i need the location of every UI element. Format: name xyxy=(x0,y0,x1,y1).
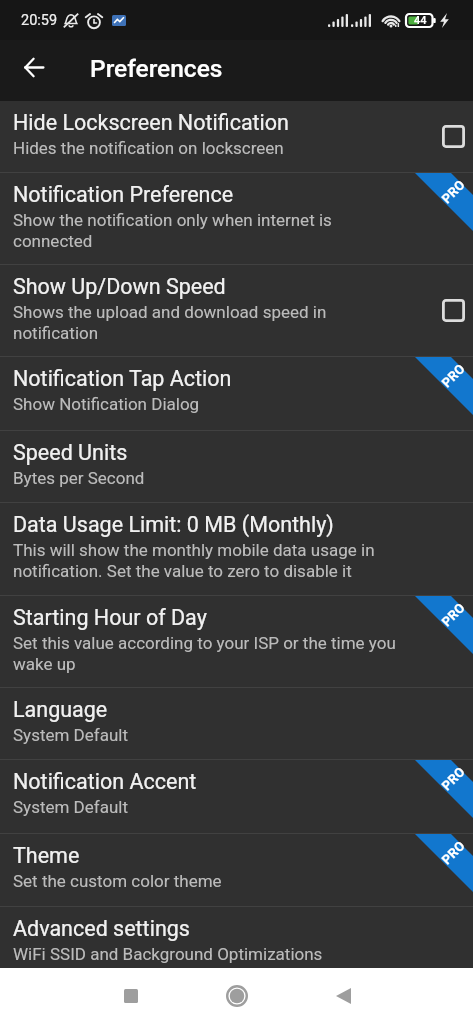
button[interactable]: Recent apps xyxy=(78,968,184,1024)
staticText: Shows the upload and download speed in n… xyxy=(13,302,327,343)
staticText: PRO xyxy=(439,600,468,629)
button[interactable]: Toggle Hide Lockscreen Notification xyxy=(419,101,473,172)
button[interactable]: Speed Units xyxy=(0,431,473,502)
staticText: Hides the notification on lockscreen xyxy=(13,138,284,158)
button[interactable]: Theme xyxy=(0,834,473,906)
button[interactable]: Show Up/Down Speed xyxy=(0,265,473,356)
staticText: Set this value according to your ISP or … xyxy=(13,633,396,674)
staticText: Speed Units xyxy=(13,440,128,465)
staticText: Bytes per Second xyxy=(13,468,145,488)
button[interactable]: Notification Accent xyxy=(0,760,473,833)
staticText: System Default xyxy=(13,797,129,817)
staticText: Data Usage Limit: 0 MB (Monthly) xyxy=(13,512,334,537)
button[interactable]: Advanced settings xyxy=(0,907,473,968)
button[interactable]: Back xyxy=(290,968,396,1024)
staticText: PRO xyxy=(439,838,468,867)
staticText: PRO xyxy=(439,177,468,206)
staticText: PRO xyxy=(439,361,468,390)
staticText: Theme xyxy=(13,843,80,868)
staticText: WiFi SSID and Background Optimizations xyxy=(13,944,323,964)
staticText: Notification Preference xyxy=(13,182,234,207)
staticText: Set the custom color theme xyxy=(13,871,222,891)
staticText: System Default xyxy=(13,725,129,745)
button[interactable]: Toggle Show Up/Down Speed xyxy=(419,265,473,356)
button[interactable]: Navigate up xyxy=(0,40,58,101)
button[interactable]: Data Usage Limit: 0 MB (Monthly) xyxy=(0,503,473,595)
button[interactable]: Notification Preference xyxy=(0,173,473,264)
staticText: Notification Tap Action xyxy=(13,366,232,391)
staticText: Preferences xyxy=(90,54,223,83)
staticText: Show Up/Down Speed xyxy=(13,274,226,299)
staticText: PRO xyxy=(439,764,468,793)
staticText: Show Notification Dialog xyxy=(13,394,200,414)
staticText: Notification Accent xyxy=(13,769,197,794)
button[interactable]: Home xyxy=(184,968,290,1024)
staticText: Advanced settings xyxy=(13,916,190,941)
staticText: Hide Lockscreen Notification xyxy=(13,110,289,135)
staticText: Show the notification only when internet… xyxy=(13,210,332,251)
staticText: 20:59 xyxy=(21,12,58,29)
button[interactable]: Language xyxy=(0,688,473,759)
button[interactable]: Notification Tap Action xyxy=(0,357,473,430)
button[interactable]: Starting Hour of Day xyxy=(0,596,473,687)
button[interactable]: Hide Lockscreen Notification xyxy=(0,101,473,172)
staticText: This will show the monthly mobile data u… xyxy=(13,540,375,581)
staticText: 44 xyxy=(414,14,427,27)
staticText: Language xyxy=(13,697,108,722)
staticText: Starting Hour of Day xyxy=(13,605,207,630)
